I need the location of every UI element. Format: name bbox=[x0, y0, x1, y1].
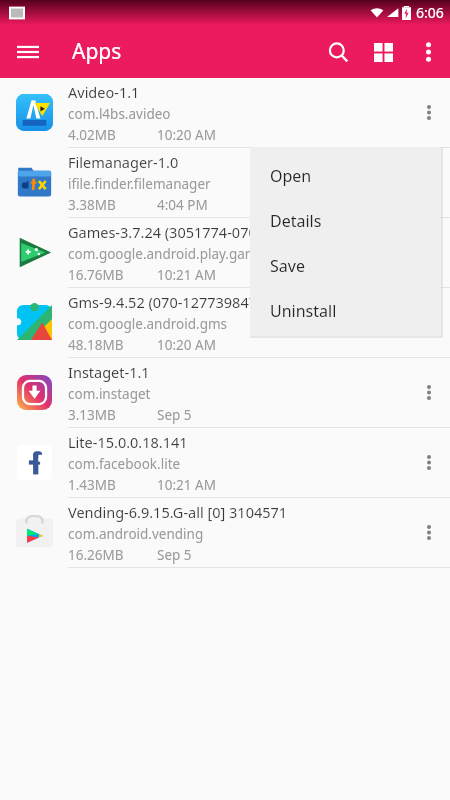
button[interactable]: More options for Avideo-1.1 bbox=[408, 78, 450, 147]
button[interactable]: Lite-15.0.0.18.141 bbox=[0, 428, 450, 498]
button[interactable]: More options for Instaget-1.1 bbox=[408, 358, 450, 427]
button[interactable]: Details bbox=[250, 198, 441, 243]
staticText: 10:21 AM bbox=[157, 476, 216, 494]
button[interactable]: Grid view bbox=[360, 29, 406, 75]
button[interactable]: More options for Gms-9.4.52 (070-1277398… bbox=[408, 288, 450, 357]
button[interactable]: Instaget-1.1 bbox=[0, 358, 450, 428]
staticText: Uninstall bbox=[270, 300, 337, 322]
button[interactable]: Vending-6.9.15.G-all [0] 3104571 bbox=[0, 498, 450, 568]
button[interactable]: More options bbox=[406, 30, 450, 74]
staticText: Lite-15.0.0.18.141 bbox=[68, 432, 188, 452]
staticText: com.l4bs.avideo bbox=[68, 105, 171, 123]
button[interactable]: Games-3.7.24 (3051774-070) bbox=[0, 218, 450, 288]
staticText: Filemanager-1.0 bbox=[68, 152, 179, 172]
staticText: Gms-9.4.52 (070-127739847) bbox=[68, 292, 262, 312]
staticText: 3.13MB bbox=[68, 406, 116, 424]
staticText: 10:20 AM bbox=[157, 126, 216, 144]
staticText: Vending-6.9.15.G-all [0] 3104571 bbox=[68, 502, 288, 522]
staticText: Sep 5 bbox=[157, 546, 192, 564]
staticText: Games-3.7.24 (3051774-070) bbox=[68, 222, 262, 242]
staticText: 4:04 PM bbox=[157, 196, 208, 214]
staticText: com.google.android.play.games bbox=[68, 245, 272, 263]
staticText: 16.26MB bbox=[68, 546, 124, 564]
staticText: com.instaget bbox=[68, 385, 151, 403]
staticText: Save bbox=[270, 255, 305, 277]
staticText: 1.43MB bbox=[68, 476, 116, 494]
staticText: 48.18MB bbox=[68, 336, 124, 354]
staticText: 10:21 AM bbox=[157, 266, 216, 284]
button[interactable]: More options for Filemanager-1.0 bbox=[408, 148, 450, 217]
staticText: 3.38MB bbox=[68, 196, 116, 214]
button[interactable]: More options for Lite-15.0.0.18.141 bbox=[408, 428, 450, 497]
button[interactable]: More options for Vending-6.9.15.G-all [0… bbox=[408, 498, 450, 567]
staticText: Details bbox=[270, 210, 322, 232]
button[interactable]: Uninstall bbox=[250, 288, 441, 333]
staticText: Instaget-1.1 bbox=[68, 362, 150, 382]
button[interactable]: Save bbox=[250, 243, 441, 288]
staticText: com.google.android.gms bbox=[68, 315, 228, 333]
staticText: 4.02MB bbox=[68, 126, 116, 144]
staticText: 10:20 AM bbox=[157, 336, 216, 354]
staticText: 6:06 bbox=[416, 3, 444, 22]
staticText: Apps bbox=[72, 37, 122, 66]
button[interactable]: Filemanager-1.0 bbox=[0, 148, 450, 218]
staticText: com.android.vending bbox=[68, 525, 204, 543]
staticText: 16.76MB bbox=[68, 266, 124, 284]
button[interactable]: Avideo-1.1 bbox=[0, 78, 450, 148]
button[interactable]: Open navigation drawer bbox=[8, 32, 48, 72]
staticText: Sep 5 bbox=[157, 406, 192, 424]
button[interactable]: Search bbox=[316, 30, 360, 74]
button[interactable]: More options for Games-3.7.24 (3051774-0… bbox=[408, 218, 450, 287]
staticText: Open bbox=[270, 165, 312, 187]
staticText: Avideo-1.1 bbox=[68, 82, 140, 102]
button[interactable]: Open bbox=[250, 153, 441, 198]
button[interactable]: Gms-9.4.52 (070-127739847) bbox=[0, 288, 450, 358]
staticText: ifile.finder.filemanager bbox=[68, 175, 211, 193]
staticText: com.facebook.lite bbox=[68, 455, 181, 473]
